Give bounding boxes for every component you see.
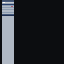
- button[interactable]: [2, 2, 14, 3]
- button[interactable]: [2, 6, 14, 7]
